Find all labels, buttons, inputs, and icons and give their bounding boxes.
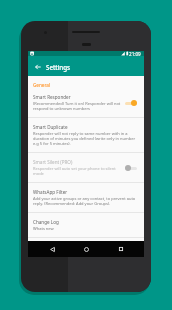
button[interactable]: Navigate up <box>31 60 44 73</box>
staticText: Smart Duplicate <box>33 124 68 130</box>
button[interactable]: Smart Silent (PRO) <box>28 153 144 182</box>
staticText: Responder will auto set your phone to si… <box>33 166 123 176</box>
button[interactable]: Toggle setting <box>125 99 138 107</box>
button[interactable]: Home <box>80 241 93 257</box>
staticText: WhatsApp Filter <box>33 189 68 195</box>
staticText: (Recommended) Turn it on) Responder will… <box>33 101 123 111</box>
staticText: Add your active groups or any contact, t… <box>33 196 138 206</box>
button[interactable]: Smart Duplicate <box>28 118 144 152</box>
button[interactable]: Smart Responder <box>28 88 144 117</box>
button[interactable]: Back <box>46 241 59 257</box>
button[interactable]: Change Log <box>28 213 144 237</box>
staticText: Smart Silent (PRO) <box>33 159 73 165</box>
staticText: Smart Responder <box>33 94 71 100</box>
staticText: Responder will not reply to same number … <box>33 131 138 146</box>
button[interactable]: Recent apps <box>114 241 127 257</box>
staticText: Change Log <box>33 219 59 225</box>
staticText: 21:09 <box>129 51 141 56</box>
staticText: Whats new <box>33 226 54 231</box>
button[interactable]: WhatsApp Filter <box>28 183 144 212</box>
staticText: Settings <box>46 63 71 71</box>
button[interactable]: Toggle setting <box>125 164 138 172</box>
staticText: General <box>33 82 51 88</box>
